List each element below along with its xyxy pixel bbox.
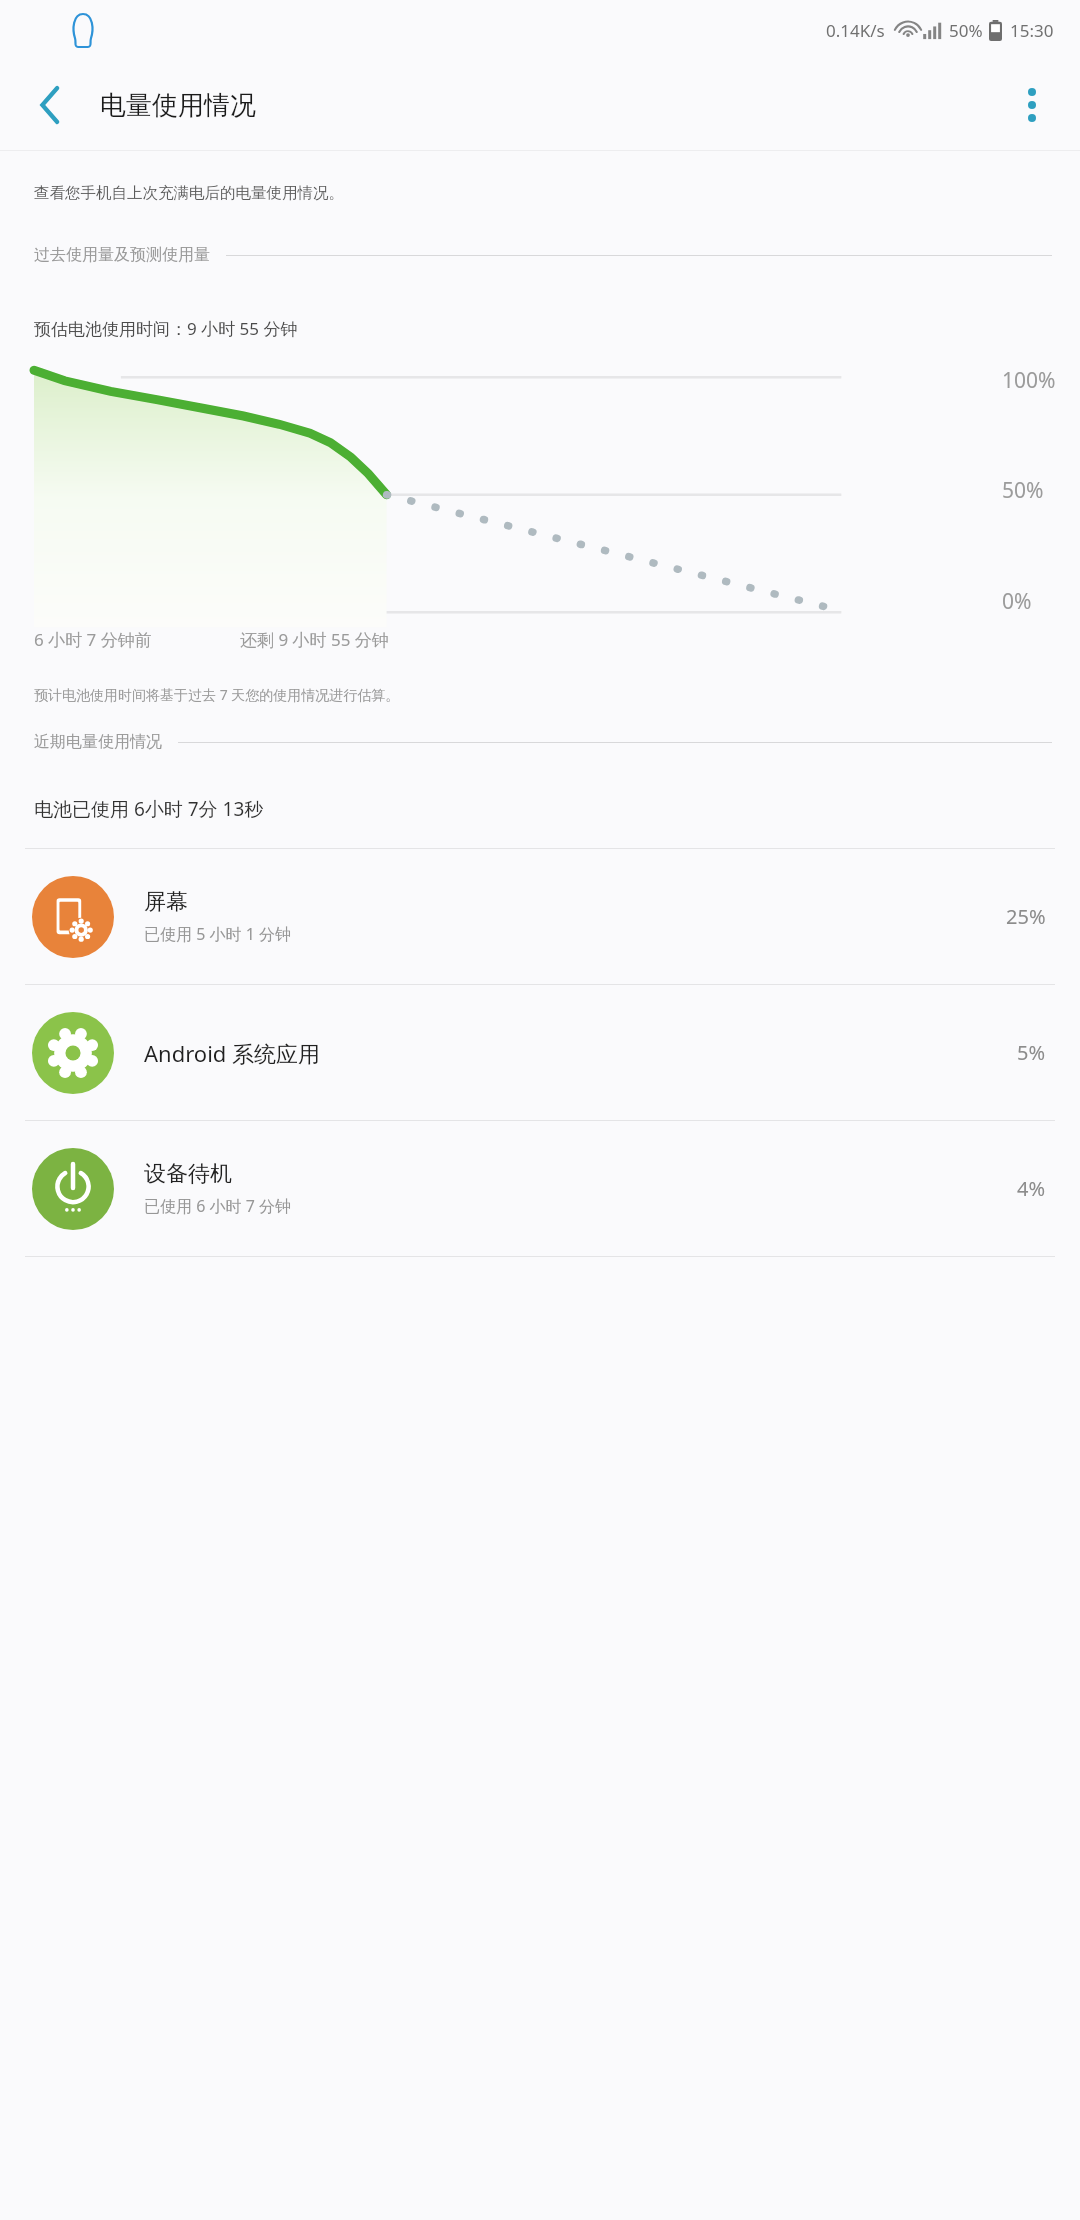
staticText: 已使用 5 小时 1 分钟	[144, 923, 291, 945]
staticText: 屏幕	[144, 888, 188, 916]
staticText: 电池已使用 6小时 7分 13秒	[34, 796, 264, 822]
staticText: 15:30	[1010, 19, 1054, 42]
staticText: 50%	[1002, 476, 1044, 505]
button[interactable]: More options	[1004, 77, 1060, 133]
button[interactable]: 屏幕	[0, 849, 1080, 984]
staticText: 还剩 9 小时 55 分钟	[240, 628, 389, 651]
staticText: 50%	[949, 19, 983, 42]
button[interactable]: 设备待机	[0, 1121, 1080, 1256]
staticText: 0%	[1002, 587, 1032, 616]
button[interactable]: Back	[22, 77, 78, 133]
staticText: 预估电池使用时间：9 小时 55 分钟	[34, 317, 298, 340]
button[interactable]: Android 系统应用	[0, 985, 1080, 1120]
staticText: Android 系统应用	[144, 1038, 321, 1068]
staticText: 近期电量使用情况	[34, 732, 162, 752]
staticText: 过去使用量及预测使用量	[34, 245, 210, 265]
staticText: 100%	[1002, 366, 1056, 395]
staticText: 电量使用情况	[100, 89, 256, 122]
staticText: 0.14K/s	[826, 19, 885, 42]
staticText: 6 小时 7 分钟前	[34, 628, 152, 651]
staticText: 已使用 6 小时 7 分钟	[144, 1195, 291, 1217]
staticText: 设备待机	[144, 1160, 232, 1188]
staticText: 查看您手机自上次充满电后的电量使用情况。	[34, 183, 344, 203]
staticText: 5%	[1017, 1039, 1046, 1066]
staticText: 预计电池使用时间将基于过去 7 天您的使用情况进行估算。	[34, 685, 400, 704]
staticText: 4%	[1017, 1175, 1046, 1202]
staticText: 25%	[1006, 903, 1046, 930]
